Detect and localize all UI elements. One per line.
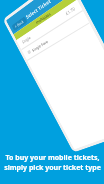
staticText: multipass <box>34 11 53 25</box>
staticText: Single Fare <box>30 39 49 53</box>
staticText: £1.70 <box>64 5 77 16</box>
staticText: Single <box>21 35 32 45</box>
staticText: To buy your mobile tickets, <box>5 153 100 163</box>
staticText: simply pick your ticket type <box>4 163 101 173</box>
staticText: Select Ticket <box>23 0 54 21</box>
button[interactable]: < Back <box>10 16 29 31</box>
staticText: < Back <box>13 18 26 29</box>
